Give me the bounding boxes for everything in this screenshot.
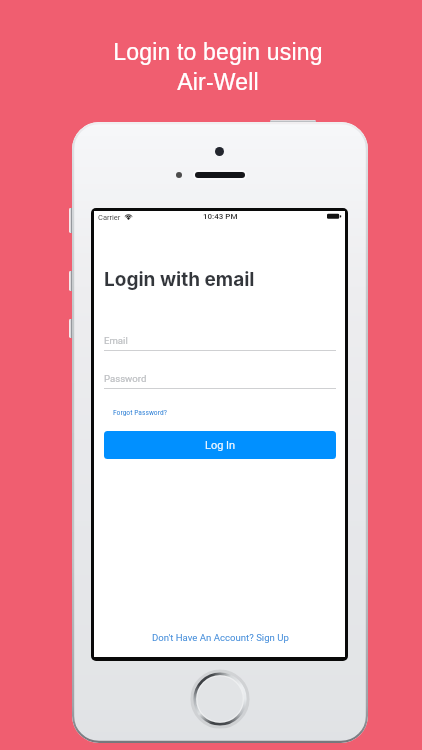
- button[interactable]: Email: [104, 335, 128, 346]
- staticText: Login to begin using Air-Well: [113, 39, 323, 95]
- other: Battery full: [327, 213, 342, 220]
- staticText: 10:43 PM: [203, 212, 238, 221]
- staticText: Password: [104, 373, 147, 384]
- staticText: Forgot Password?: [113, 408, 167, 417]
- staticText: Email: [104, 335, 128, 346]
- button[interactable]: Log In: [104, 431, 336, 459]
- staticText: Don't Have An Account? Sign Up: [152, 632, 289, 643]
- staticText: Login with email: [104, 268, 255, 291]
- staticText: Carrier: [98, 213, 121, 222]
- other: Wi-Fi signal: [124, 213, 133, 220]
- other: Home button: [191, 670, 249, 728]
- staticText: Log In: [205, 439, 236, 452]
- button[interactable]: Password: [104, 373, 147, 384]
- button[interactable]: Forgot Password?: [113, 408, 167, 417]
- button[interactable]: Don't Have An Account? Sign Up: [152, 632, 289, 643]
